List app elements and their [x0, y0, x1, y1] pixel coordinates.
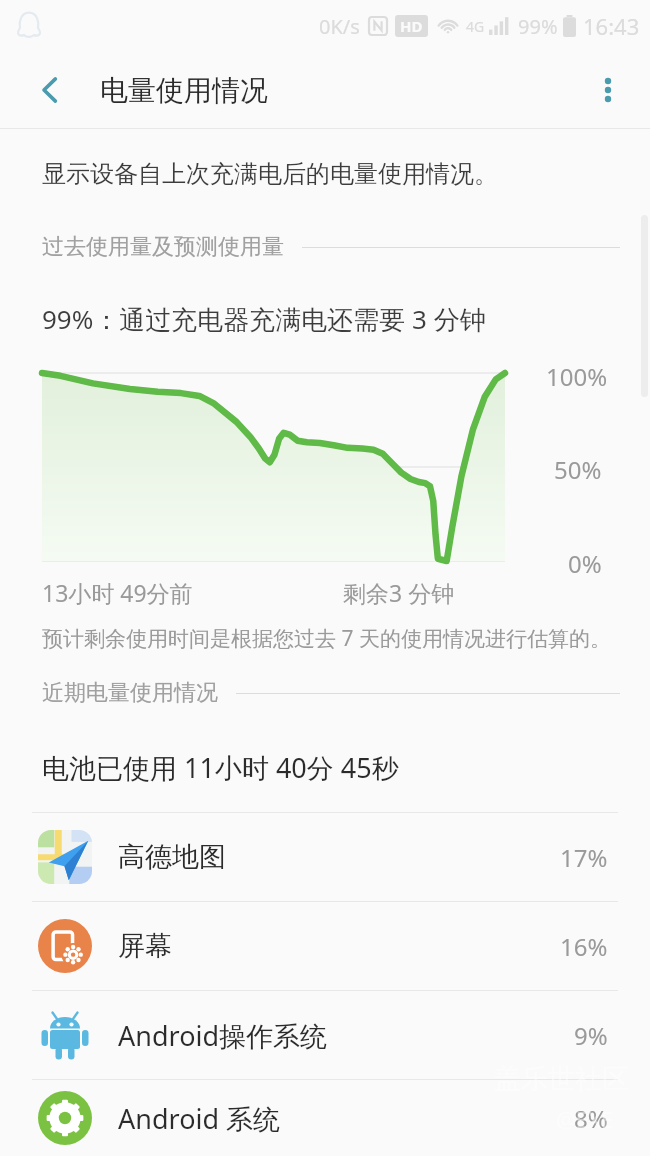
staticText: 0% [568, 547, 602, 580]
staticText: 显示设备自上次充满电后的电量使用情况。 [42, 159, 498, 189]
staticText: 过去使用量及预测使用量 [42, 233, 284, 261]
staticText: @EXE [556, 1104, 614, 1134]
staticText: Android操作系统 [118, 1017, 328, 1054]
button[interactable]: 屏幕 [0, 902, 650, 990]
staticText: 17% [560, 841, 608, 874]
staticText: Android 系统 [118, 1100, 281, 1137]
staticText: HD [400, 16, 423, 36]
staticText: 16:43 [583, 11, 640, 41]
button[interactable]: Android操作系统 [0, 991, 650, 1079]
staticText: 近期电量使用情况 [42, 679, 218, 707]
button[interactable]: 高德地图 [0, 813, 650, 901]
staticText: 4G [466, 17, 485, 36]
staticText: 13小时 49分前 [42, 577, 193, 608]
staticText: 100% [546, 360, 608, 393]
staticText: 高德地图 [118, 840, 226, 874]
staticText: 电量使用情况 [100, 73, 268, 108]
button[interactable]: Android 系统 [0, 1080, 650, 1156]
staticText: 99%：通过充电器充满电还需要 3 分钟 [42, 301, 486, 337]
staticText: 9% [574, 1019, 608, 1052]
button[interactable]: Back [24, 64, 76, 116]
staticText: 电池已使用 11小时 40分 45秒 [42, 749, 399, 786]
staticText: 0K/s [319, 13, 360, 40]
staticText: 8% [574, 1102, 608, 1135]
staticText: 预计剩余使用时间是根据您过去 7 天的使用情况进行估算的。 [42, 624, 611, 653]
button[interactable]: More options [582, 64, 634, 116]
staticText: 剩余3 分钟 [343, 577, 455, 608]
staticText: 99% [518, 13, 558, 40]
staticText: 屏幕 [118, 929, 172, 963]
staticText: 50% [554, 453, 602, 486]
staticText: 16% [560, 930, 608, 963]
